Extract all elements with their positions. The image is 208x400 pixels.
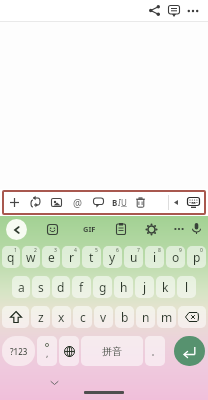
staticText: m	[161, 309, 173, 325]
staticText: h	[120, 279, 128, 295]
staticText: ,	[46, 347, 49, 359]
staticText: p	[193, 249, 201, 265]
staticText: 拼音	[102, 345, 122, 358]
button[interactable]	[178, 306, 206, 328]
staticText: q	[7, 249, 15, 265]
button[interactable]: v	[94, 306, 113, 328]
button[interactable]: b	[115, 306, 134, 328]
button[interactable]	[164, 1, 183, 20]
button[interactable]: GIF	[77, 217, 101, 241]
staticText: v	[100, 309, 107, 325]
button[interactable]	[40, 217, 64, 241]
staticText: g	[99, 279, 107, 295]
staticText: n	[142, 309, 150, 325]
staticText: GIF	[83, 224, 96, 234]
staticText: y	[109, 249, 116, 265]
button[interactable]: B	[109, 190, 130, 215]
staticText: x	[58, 309, 65, 325]
staticText: z	[38, 309, 44, 325]
button[interactable]	[139, 217, 163, 241]
staticText: l	[185, 279, 189, 295]
staticText: u	[130, 249, 138, 265]
button[interactable]: m	[157, 306, 176, 328]
button[interactable]: r	[62, 246, 80, 268]
button[interactable]: 。	[145, 336, 165, 366]
staticText: d	[57, 279, 65, 295]
staticText: I	[118, 197, 121, 208]
staticText: k	[162, 279, 169, 295]
button[interactable]: q	[2, 246, 20, 268]
button[interactable]	[4, 190, 25, 215]
button[interactable]: z	[31, 306, 50, 328]
staticText: 1	[14, 247, 17, 254]
button[interactable]: y	[103, 246, 122, 268]
button[interactable]: o	[166, 246, 185, 268]
staticText: 3	[54, 247, 57, 254]
button[interactable]: w	[22, 246, 40, 268]
button[interactable]	[59, 336, 79, 366]
staticText: f	[79, 279, 84, 295]
button[interactable]: u	[124, 246, 143, 268]
button[interactable]	[183, 190, 203, 215]
staticText: j	[143, 279, 147, 295]
staticText: i	[153, 249, 157, 265]
button[interactable]: f	[72, 276, 91, 298]
button[interactable]	[167, 217, 191, 241]
staticText: w	[26, 249, 36, 265]
staticText: 7	[137, 247, 140, 254]
button[interactable]: @	[67, 190, 88, 215]
button[interactable]	[130, 190, 151, 215]
button[interactable]: j	[135, 276, 154, 298]
staticText: 。	[151, 346, 160, 357]
staticText: o	[172, 249, 180, 265]
staticText: a	[18, 279, 25, 295]
button[interactable]: x	[52, 306, 71, 328]
staticText: e	[48, 249, 55, 265]
staticText: r	[69, 249, 74, 265]
button[interactable]	[6, 219, 27, 240]
staticText: 0	[200, 247, 203, 254]
staticText: 2	[34, 247, 37, 254]
button[interactable]	[184, 217, 208, 241]
staticText: 5	[95, 247, 98, 254]
button[interactable]: t	[82, 246, 101, 268]
staticText: U	[121, 197, 127, 208]
button[interactable]	[46, 190, 67, 215]
button[interactable]: p	[187, 246, 206, 268]
button[interactable]	[169, 190, 183, 215]
button[interactable]: a	[12, 276, 30, 298]
button[interactable]	[88, 190, 109, 215]
staticText: 9	[179, 247, 182, 254]
button[interactable]	[109, 217, 133, 241]
button[interactable]: k	[156, 276, 175, 298]
staticText: b	[121, 309, 129, 325]
staticText: ?123	[10, 346, 28, 357]
button[interactable]	[174, 336, 205, 366]
staticText: 8	[158, 247, 161, 254]
button[interactable]: h	[114, 276, 133, 298]
button[interactable]	[2, 306, 29, 328]
button[interactable]: s	[32, 276, 50, 298]
button[interactable]: g	[93, 276, 112, 298]
button[interactable]: c	[73, 306, 92, 328]
staticText: 6	[116, 247, 119, 254]
button[interactable]: ?123	[2, 336, 35, 366]
staticText: B	[112, 197, 118, 208]
staticText: s	[38, 279, 44, 295]
button[interactable]: n	[136, 306, 155, 328]
button[interactable]: ,	[37, 336, 57, 366]
button[interactable]	[183, 1, 202, 20]
button[interactable]: l	[177, 276, 196, 298]
staticText: c	[80, 309, 86, 325]
button[interactable]: d	[52, 276, 70, 298]
button[interactable]: 拼音	[81, 336, 143, 366]
staticText: @	[73, 196, 82, 210]
button[interactable]: i	[145, 246, 164, 268]
staticText: t	[89, 249, 94, 265]
button[interactable]: e	[42, 246, 60, 268]
staticText: 4	[74, 247, 77, 254]
button[interactable]	[25, 190, 46, 215]
button[interactable]	[145, 1, 164, 20]
